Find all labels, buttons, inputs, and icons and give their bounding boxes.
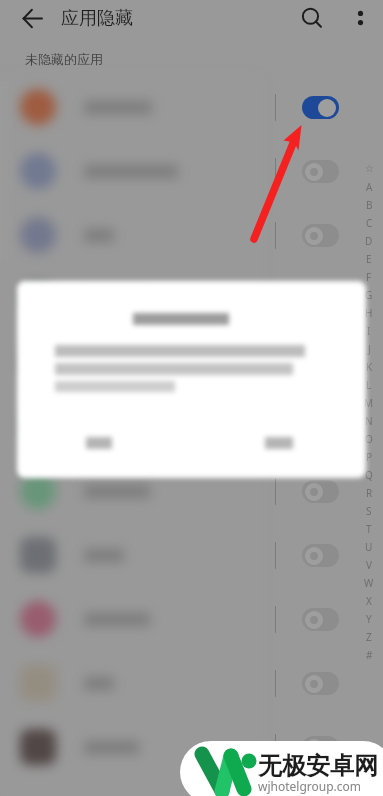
staticText: # [366, 648, 373, 662]
staticText: wjhotelgroup.com [258, 778, 362, 794]
button[interactable]: Off [302, 736, 339, 759]
staticText: F [366, 270, 372, 284]
staticText: S [366, 504, 372, 518]
button[interactable]: On [0, 75, 383, 139]
staticText: O [365, 432, 373, 446]
button[interactable]: Back [14, 0, 50, 36]
staticText: 未隐藏的应用 [25, 51, 103, 67]
staticText: 应用隐藏 [61, 7, 133, 30]
staticText: D [365, 234, 373, 248]
button[interactable]: Off [302, 480, 339, 503]
staticText: B [366, 198, 373, 212]
staticText: 无极安卓网 [258, 751, 378, 781]
button[interactable]: Off [0, 651, 383, 715]
button[interactable]: Off [302, 224, 339, 247]
staticText: H [365, 306, 373, 320]
button[interactable]: Off [0, 395, 383, 459]
button[interactable]: Off [0, 203, 383, 267]
staticText: X [366, 594, 372, 608]
staticText: Q [365, 468, 373, 482]
button[interactable]: Off [0, 715, 383, 779]
button[interactable]: On [302, 96, 339, 119]
button[interactable]: Off [302, 672, 339, 695]
button[interactable]: Off [302, 352, 339, 375]
staticText: M [364, 396, 374, 410]
button[interactable]: More options [342, 0, 378, 36]
staticText: T [366, 522, 372, 536]
staticText: Z [366, 630, 372, 644]
button[interactable]: Off [0, 587, 383, 651]
button[interactable]: Off [0, 139, 383, 203]
staticText: R [366, 486, 373, 500]
button[interactable] [69, 426, 129, 460]
staticText: K [366, 360, 373, 374]
staticText: U [365, 540, 373, 554]
button[interactable]: Off [302, 544, 339, 567]
button[interactable]: Alphabet index [360, 160, 378, 664]
staticText: Y [366, 612, 372, 626]
staticText: E [366, 252, 372, 266]
staticText: J [368, 342, 371, 356]
button[interactable]: Search [294, 0, 330, 36]
button[interactable]: Off [302, 160, 339, 183]
staticText: P [366, 450, 373, 464]
staticText: ☆ [365, 163, 374, 175]
button[interactable]: Off [302, 608, 339, 631]
staticText: V [366, 558, 372, 572]
staticText: I [367, 324, 371, 338]
staticText: N [365, 414, 373, 428]
button[interactable]: Off [0, 523, 383, 587]
staticText: W [364, 576, 374, 590]
staticText: L [366, 378, 372, 392]
button[interactable]: Off [0, 331, 383, 395]
staticText: G [365, 288, 373, 302]
button[interactable] [249, 426, 309, 460]
staticText: A [366, 180, 373, 194]
staticText: C [366, 216, 373, 230]
button[interactable]: Off [0, 459, 383, 523]
button[interactable]: Off [0, 267, 383, 331]
